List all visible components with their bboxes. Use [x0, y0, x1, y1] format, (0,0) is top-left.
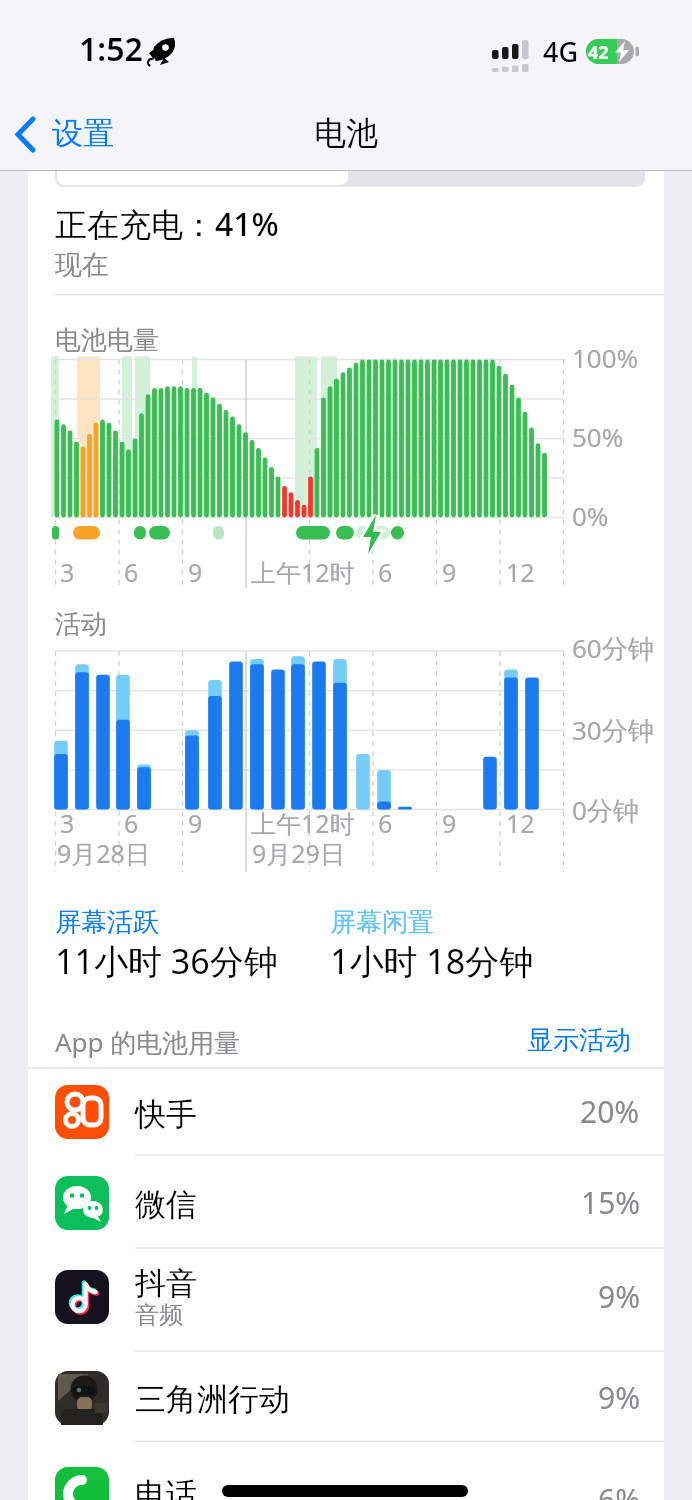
staticText: 0% [572, 498, 609, 533]
staticText: 正在充电：41% [55, 202, 279, 246]
button[interactable] [520, 1018, 640, 1058]
staticText: 电池 [314, 113, 378, 153]
staticText: 12 [506, 555, 535, 589]
staticText: 屏幕闲置 [330, 906, 434, 939]
staticText: 上午12时 [251, 555, 355, 589]
staticText: 设置 [52, 114, 114, 153]
staticText: 9% [598, 1377, 641, 1418]
staticText: 1小时 18分钟 [330, 938, 534, 984]
staticText: 20% [580, 1091, 640, 1132]
staticText: 电话 [135, 1475, 197, 1500]
staticText: 9% [598, 1276, 641, 1317]
button[interactable] [10, 105, 120, 165]
staticText: 抖音 [135, 1264, 197, 1303]
staticText: 微信 [135, 1185, 197, 1224]
staticText: 音频 [135, 1300, 183, 1330]
staticText: 上午12时 [251, 806, 355, 840]
staticText: 50% [572, 419, 624, 454]
staticText: 9 [188, 806, 203, 840]
staticText: 6 [124, 555, 139, 589]
staticText: 30分钟 [572, 712, 654, 748]
staticText: 三角洲行动 [135, 1380, 290, 1419]
staticText: 1:52 [79, 27, 143, 71]
button[interactable] [28, 1250, 664, 1355]
staticText: 3 [60, 806, 75, 840]
staticText: 3 [60, 555, 75, 589]
staticText: 显示活动 [527, 1024, 631, 1057]
staticText: 活动 [55, 608, 107, 641]
staticText: 12 [506, 806, 535, 840]
button[interactable] [55, 171, 350, 187]
button[interactable] [28, 1355, 664, 1443]
staticText: 9 [442, 555, 457, 589]
staticText: 4G [543, 33, 579, 70]
staticText: 15% [581, 1182, 641, 1223]
staticText: 0分钟 [572, 792, 639, 828]
staticText: 电池电量 [55, 324, 159, 357]
button[interactable] [28, 1069, 664, 1158]
staticText: 100% [572, 340, 639, 375]
button[interactable] [28, 1443, 664, 1500]
button[interactable] [28, 1158, 664, 1250]
staticText: 快手 [135, 1095, 197, 1134]
staticText: 9月29日 [252, 836, 345, 870]
staticText: 6 [124, 806, 139, 840]
staticText: 9月28日 [57, 836, 150, 870]
staticText: 现在 [55, 248, 109, 282]
staticText: 6 [378, 555, 393, 589]
staticText: 9 [188, 555, 203, 589]
staticText: 6% [598, 1479, 641, 1500]
staticText: 屏幕活跃 [55, 906, 159, 939]
staticText: 42 [588, 40, 609, 65]
staticText: 60分钟 [572, 630, 654, 666]
staticText: App 的电池用量 [55, 1024, 241, 1060]
staticText: 6 [378, 806, 393, 840]
staticText: 11小时 36分钟 [55, 938, 278, 984]
staticText: 9 [442, 806, 457, 840]
